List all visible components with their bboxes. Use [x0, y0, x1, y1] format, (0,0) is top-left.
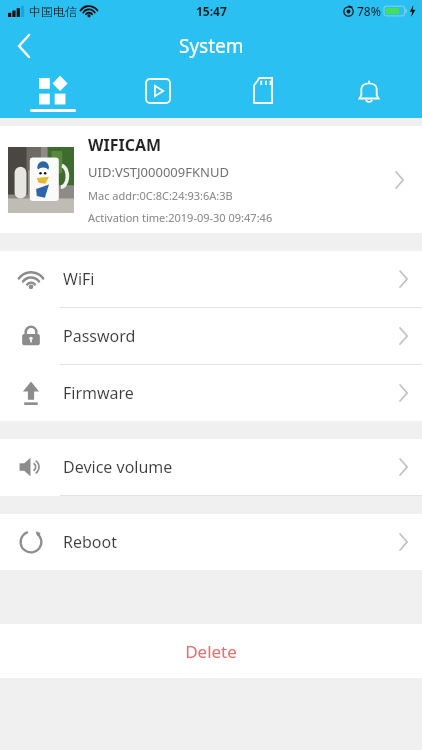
button[interactable]: WIFICAM [0, 126, 422, 233]
staticText: WiFi [63, 268, 399, 290]
staticText: System [179, 33, 244, 59]
staticText: Password [63, 325, 399, 347]
button[interactable]: Delete [0, 624, 422, 678]
button[interactable]: Device volume [0, 439, 422, 495]
staticText: Firmware [63, 382, 399, 404]
staticText: Delete [185, 640, 237, 663]
staticText: Activation time:2019-09-30 09:47:46 [88, 210, 273, 225]
button[interactable]: Devices [0, 70, 105, 118]
button[interactable]: Back [0, 22, 48, 70]
button[interactable]: Videos [105, 70, 210, 118]
staticText: Reboot [63, 531, 399, 553]
staticText: Device volume [63, 456, 399, 478]
staticText: Mac addr:0C:8C:24:93:6A:3B [88, 188, 233, 203]
staticText: 15:47 [196, 3, 227, 19]
button[interactable]: Firmware [0, 365, 422, 421]
staticText: UID:VSTJ000009FKNUD [88, 163, 229, 181]
button[interactable]: Password [0, 308, 422, 364]
button[interactable]: WiFi [0, 251, 422, 307]
button[interactable]: Reboot [0, 514, 422, 570]
staticText: 中国电信 [29, 4, 77, 19]
button[interactable]: Alerts [316, 70, 422, 118]
button[interactable]: Storage [210, 70, 316, 118]
staticText: 78% [357, 3, 381, 19]
staticText: WIFICAM [88, 134, 162, 156]
